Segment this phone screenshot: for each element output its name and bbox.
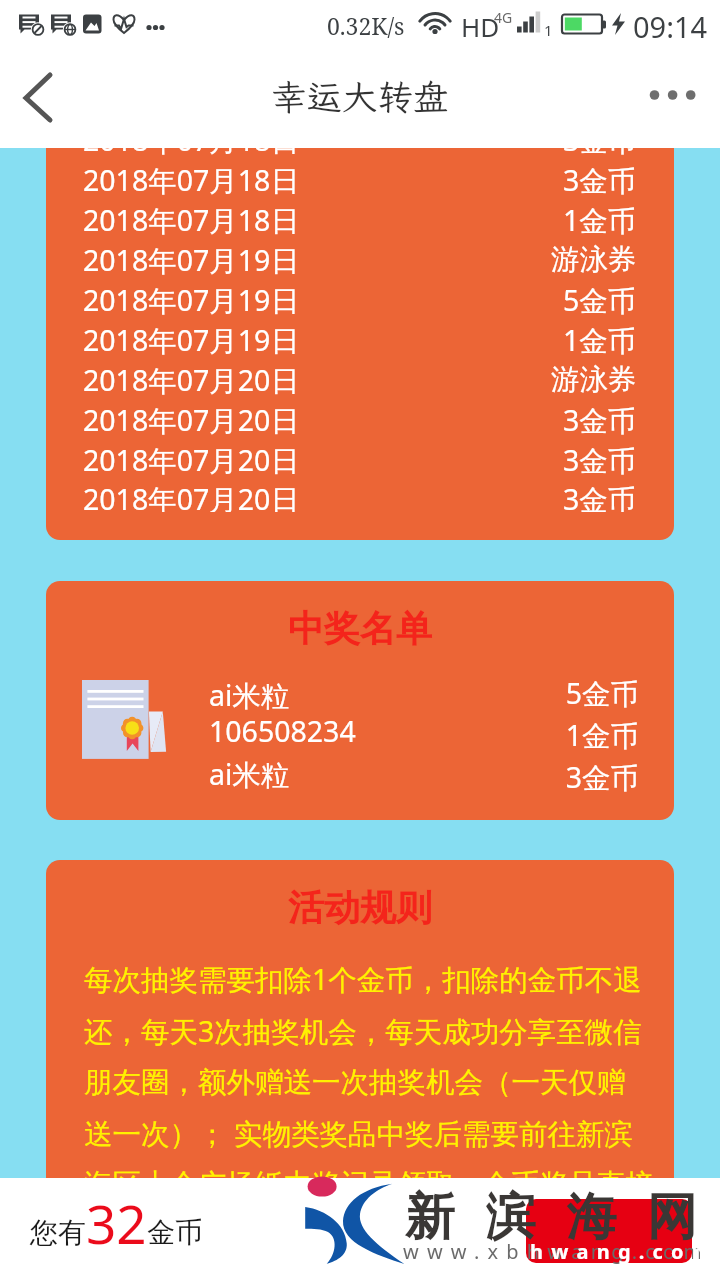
- staticText: 中奖名单: [288, 606, 432, 651]
- staticText: 2018年07月20日: [83, 480, 299, 512]
- staticText: 2018年07月20日: [83, 401, 299, 440]
- staticText: 1: [544, 20, 553, 40]
- staticText: 3金币: [563, 401, 637, 440]
- staticText: 新滨海网: [405, 1186, 720, 1249]
- staticText: 金币: [147, 1215, 203, 1250]
- staticText: 3金币: [563, 148, 637, 160]
- staticText: 3金币: [563, 480, 637, 512]
- staticText: 4G: [494, 8, 513, 27]
- staticText: hwang.com: [530, 1238, 720, 1265]
- staticText: www.xbhwang.com: [403, 1238, 711, 1265]
- staticText: 3金币: [563, 441, 637, 480]
- button[interactable]: 中奖名单: [46, 581, 674, 820]
- staticText: 游泳券: [551, 242, 637, 278]
- staticText: 2018年07月19日: [83, 241, 299, 280]
- staticText: 游泳券: [551, 362, 637, 398]
- staticText: ai米粒: [209, 755, 290, 794]
- staticText: 您有: [30, 1215, 86, 1250]
- staticText: 2018年07月19日: [83, 321, 299, 360]
- staticText: 32: [86, 1187, 147, 1259]
- button[interactable]: More options: [630, 48, 720, 148]
- button[interactable]: Back: [0, 48, 76, 148]
- staticText: HD: [461, 9, 500, 44]
- staticText: 每次抽奖需要扣除1个金币，扣除的金币不退 还，每天3次抽奖机会，每天成功分享至微…: [84, 960, 654, 1190]
- button[interactable]: 您有: [30, 1187, 203, 1259]
- button[interactable]: 2018年07月18日: [46, 148, 674, 540]
- staticText: 2018年07月18日: [83, 161, 299, 200]
- staticText: 2018年07月18日: [83, 201, 299, 240]
- staticText: 5金币: [563, 281, 637, 320]
- staticText: ai米粒 106508234: [209, 676, 356, 750]
- staticText: 2018年07月18日: [83, 148, 299, 160]
- staticText: 1金币: [563, 321, 637, 360]
- staticText: 1金币: [563, 201, 637, 240]
- staticText: 幸运大转盘: [271, 73, 449, 120]
- staticText: 09:14: [633, 7, 708, 46]
- staticText: 2018年07月20日: [83, 361, 299, 400]
- staticText: 3金币: [563, 161, 637, 200]
- staticText: 2018年07月19日: [83, 281, 299, 320]
- staticText: 活动规则: [288, 885, 432, 930]
- button[interactable]: 活动规则: [46, 860, 674, 1190]
- staticText: 0.32K/s: [327, 10, 405, 41]
- staticText: 5金币 1金币 3金币: [565, 674, 639, 797]
- staticText: 2018年07月20日: [83, 441, 299, 480]
